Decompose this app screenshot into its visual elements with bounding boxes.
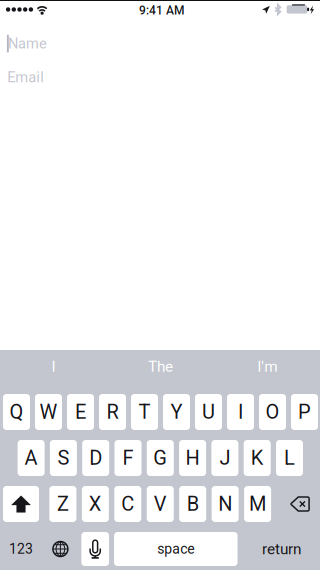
button[interactable]: U: [195, 394, 222, 430]
button[interactable]: The: [111, 347, 211, 385]
staticText: T: [138, 400, 150, 424]
staticText: W: [39, 400, 57, 424]
button[interactable]: Y: [163, 394, 190, 430]
staticText: I: [51, 357, 55, 375]
button[interactable]: L: [276, 440, 303, 476]
button[interactable]: T: [131, 394, 158, 430]
button[interactable]: Next keyboard: [42, 532, 78, 566]
staticText: X: [89, 492, 102, 516]
staticText: 123: [9, 541, 33, 557]
staticText: D: [89, 446, 102, 470]
button[interactable]: Email: [0, 61, 320, 93]
staticText: R: [106, 400, 118, 424]
button[interactable]: I'm: [217, 347, 317, 385]
button[interactable]: I: [3, 347, 103, 385]
staticText: O: [265, 400, 279, 424]
button[interactable]: K: [244, 440, 271, 476]
button[interactable]: F: [114, 440, 141, 476]
staticText: S: [57, 446, 69, 470]
button[interactable]: P: [291, 394, 318, 430]
staticText: G: [153, 446, 167, 470]
staticText: C: [121, 492, 134, 516]
button[interactable]: J: [211, 440, 238, 476]
staticText: L: [284, 446, 295, 470]
button[interactable]: Delete: [282, 486, 318, 522]
staticText: Y: [170, 400, 182, 424]
staticText: E: [75, 400, 86, 424]
staticText: Email: [7, 69, 44, 86]
button[interactable]: Dictate: [81, 532, 109, 566]
staticText: K: [251, 446, 264, 470]
staticText: I: [238, 400, 243, 424]
button[interactable]: D: [82, 440, 109, 476]
staticText: The: [148, 357, 173, 375]
staticText: 9:41 AM: [139, 3, 184, 18]
staticText: U: [202, 400, 215, 424]
button[interactable]: I: [227, 394, 254, 430]
button[interactable]: Name: [0, 28, 320, 60]
staticText: space: [157, 541, 194, 557]
button[interactable]: V: [147, 486, 174, 522]
button[interactable]: R: [99, 394, 126, 430]
button[interactable]: M: [244, 486, 271, 522]
staticText: N: [218, 492, 232, 516]
button[interactable]: B: [179, 486, 206, 522]
button[interactable]: A: [18, 440, 45, 476]
button[interactable]: W: [35, 394, 62, 430]
staticText: Q: [9, 400, 23, 424]
button[interactable]: Q: [3, 394, 30, 430]
button[interactable]: E: [67, 394, 94, 430]
button[interactable]: Z: [49, 486, 76, 522]
button[interactable]: 123: [3, 532, 39, 566]
button[interactable]: Shift: [3, 486, 39, 522]
staticText: F: [122, 446, 133, 470]
button[interactable]: G: [147, 440, 174, 476]
staticText: Z: [57, 492, 69, 516]
staticText: A: [25, 446, 38, 470]
staticText: Name: [8, 35, 47, 52]
staticText: I'm: [257, 357, 277, 375]
staticText: H: [186, 446, 200, 470]
button[interactable]: S: [50, 440, 77, 476]
button[interactable]: space: [114, 532, 238, 566]
staticText: M: [249, 492, 266, 516]
button[interactable]: O: [259, 394, 286, 430]
staticText: J: [219, 446, 230, 470]
staticText: P: [298, 400, 311, 424]
button[interactable]: H: [179, 440, 206, 476]
staticText: return: [262, 540, 301, 558]
button[interactable]: C: [114, 486, 141, 522]
button[interactable]: N: [212, 486, 239, 522]
button[interactable]: return: [252, 532, 312, 566]
button[interactable]: X: [82, 486, 109, 522]
staticText: V: [154, 492, 167, 516]
staticText: B: [187, 492, 199, 516]
